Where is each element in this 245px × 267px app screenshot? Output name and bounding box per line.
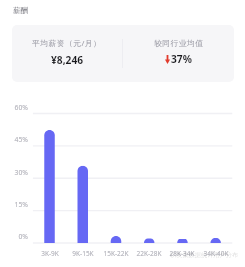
- staticText: 60%: [4, 103, 28, 112]
- staticText: 34K-40K: [199, 249, 233, 258]
- staticText: 15K-22K: [99, 249, 133, 258]
- staticText: 3K-9K: [33, 249, 67, 258]
- staticText: 22K-28K: [132, 249, 166, 258]
- staticText: 28K-34K: [165, 249, 199, 258]
- staticText: 37%: [171, 52, 192, 66]
- staticText: 职友集数据统计用户分布: [170, 251, 239, 259]
- staticText: 薪酬: [13, 6, 29, 16]
- staticText: 9K-15K: [66, 249, 100, 258]
- staticText: 0%: [4, 232, 28, 241]
- staticText: 30%: [4, 168, 28, 177]
- staticText: 45%: [4, 135, 28, 144]
- staticText: 平均薪资（元/月）: [32, 38, 102, 49]
- staticText: ¥8,246: [51, 53, 84, 67]
- staticText: 较同行业均值: [154, 38, 204, 48]
- button[interactable]: 较同行业均值: [123, 25, 234, 82]
- button[interactable]: 平均薪资（元/月）: [12, 25, 122, 82]
- staticText: 15%: [4, 200, 28, 209]
